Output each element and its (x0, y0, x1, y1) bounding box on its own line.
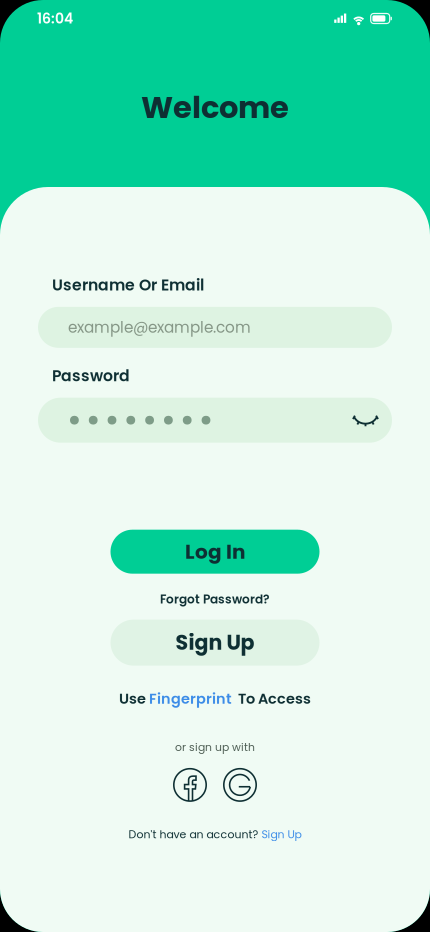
staticText: 16:04 (37, 9, 73, 28)
staticText: Welcome (141, 86, 289, 129)
staticText: example@example.com (68, 317, 251, 338)
button[interactable]: Sign up with Google (223, 768, 257, 802)
button[interactable]: Sign Up (110, 620, 319, 666)
staticText: Use (119, 689, 149, 709)
staticText: or sign up with (175, 740, 255, 755)
staticText: Don't have an account? (128, 827, 261, 842)
staticText: Fingerprint (149, 689, 232, 709)
button[interactable]: Sign up with Facebook (173, 768, 207, 802)
button[interactable]: Log In (110, 530, 319, 574)
staticText: Username Or Email (52, 274, 204, 296)
staticText: To Access (232, 689, 311, 709)
staticText: Sign Up (175, 628, 254, 657)
staticText: Log In (185, 538, 245, 566)
button[interactable]: Show password (347, 401, 379, 440)
button[interactable]: Don't have an account? (128, 824, 301, 845)
staticText: Sign Up (261, 827, 301, 842)
staticText: Forgot Password? (160, 591, 270, 608)
button[interactable]: Forgot Password? (160, 589, 270, 610)
staticText: Password (52, 365, 130, 387)
button[interactable]: Use (119, 685, 311, 713)
